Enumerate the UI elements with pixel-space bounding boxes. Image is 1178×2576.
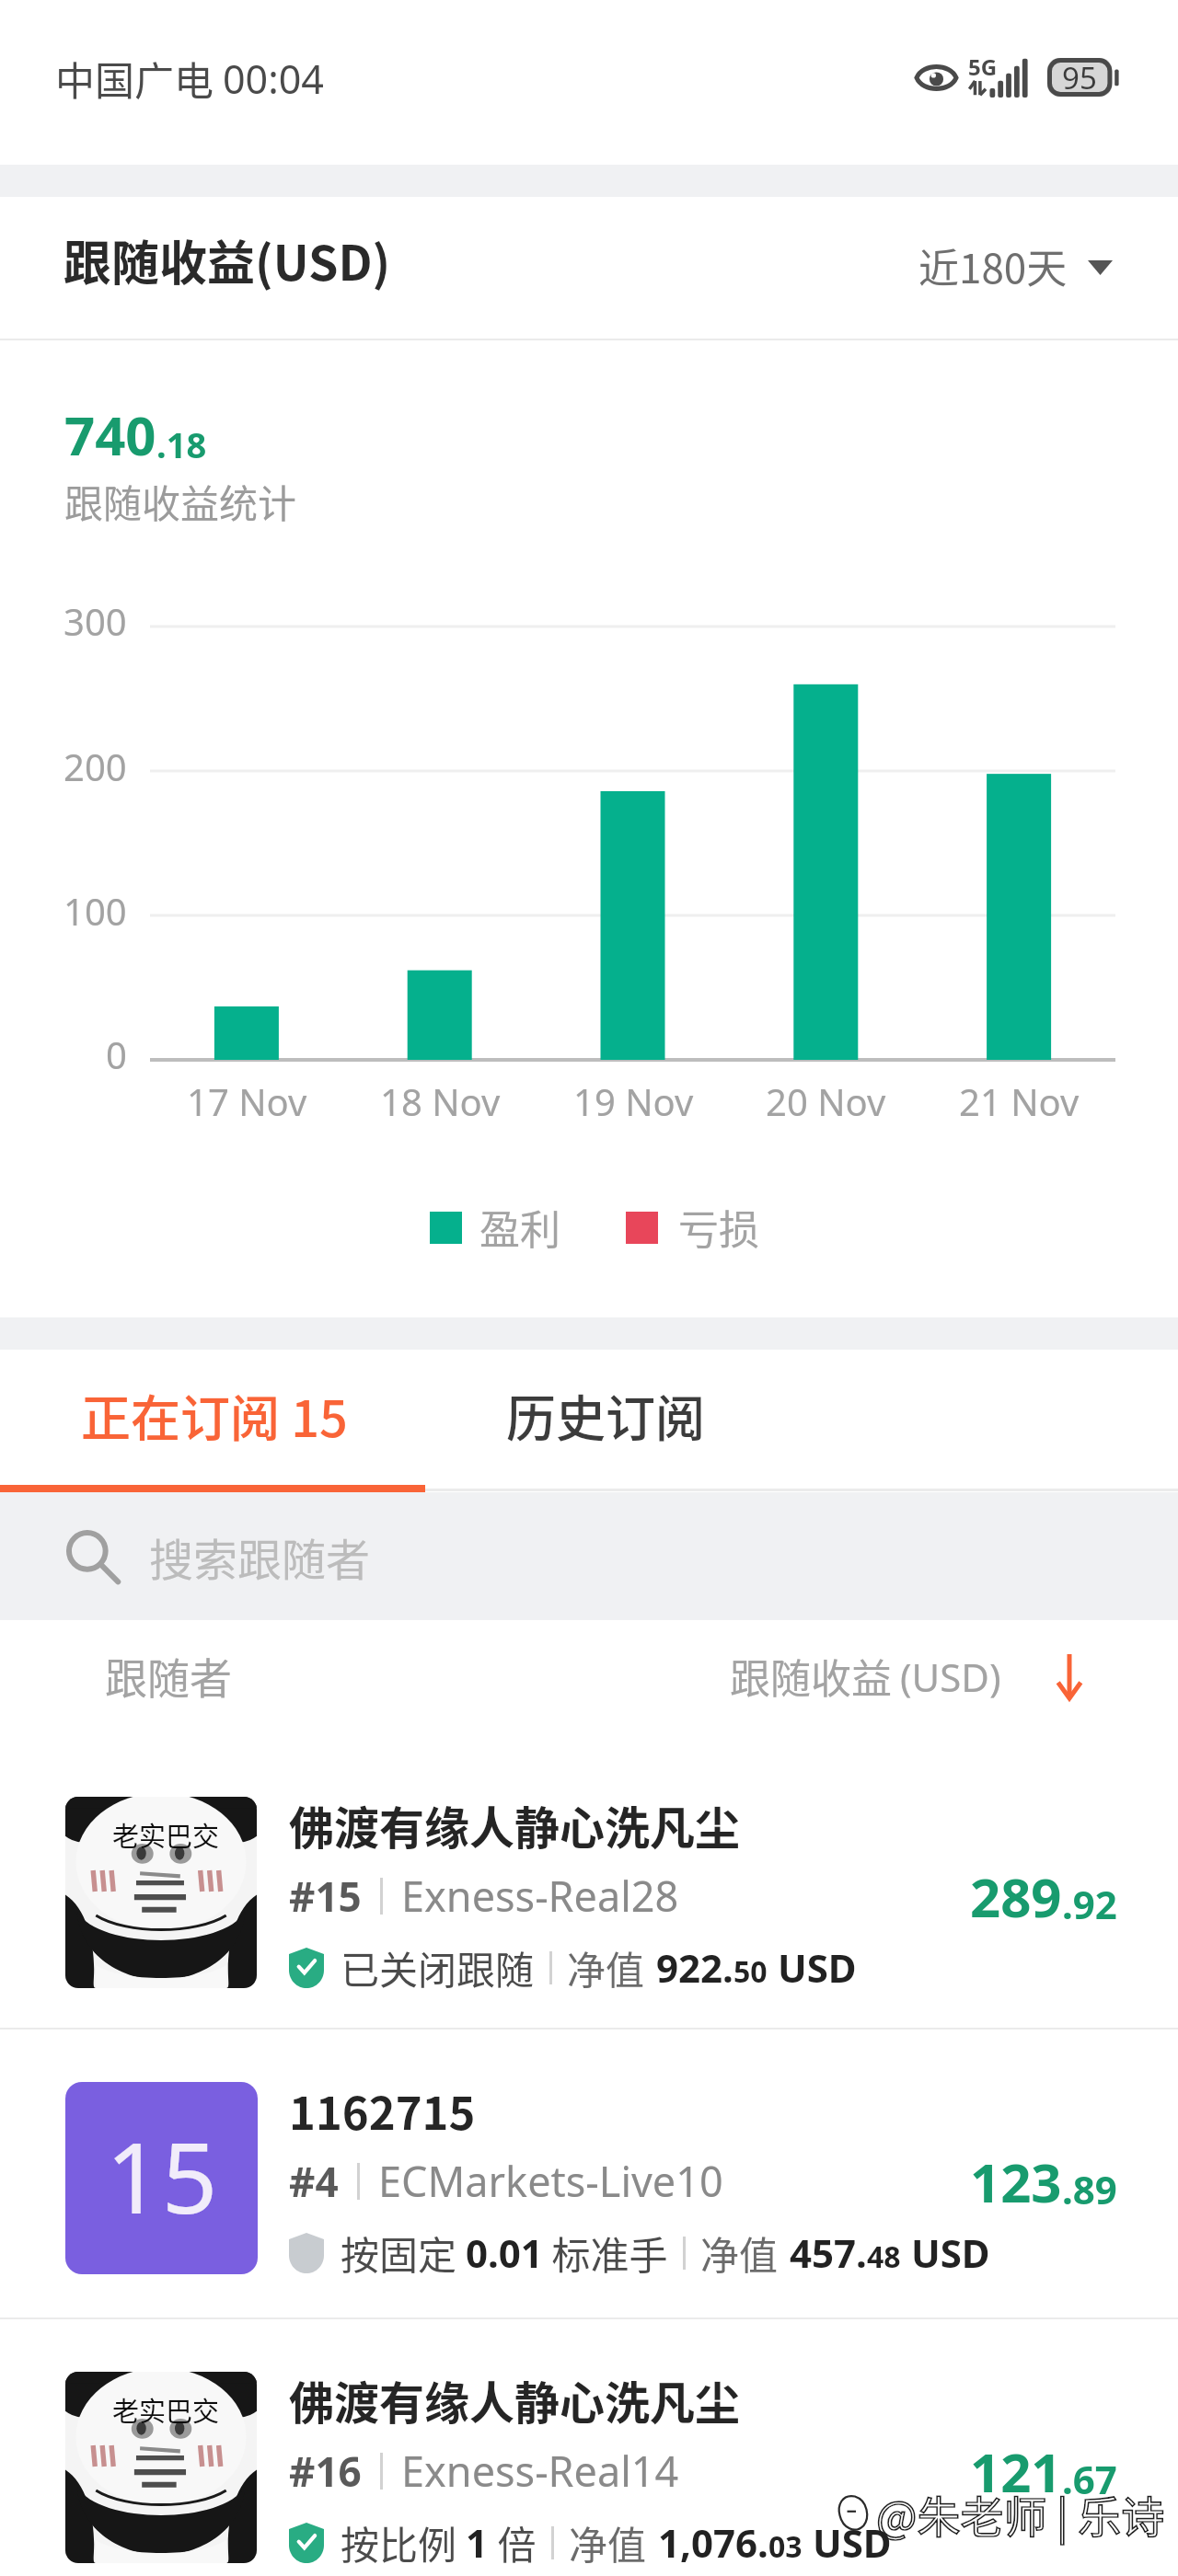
staticText: #15 bbox=[289, 1869, 362, 1924]
button[interactable]: 近180天 bbox=[900, 224, 1178, 312]
staticText: USD bbox=[803, 2516, 892, 2569]
staticText: 按固定 bbox=[341, 2225, 466, 2281]
staticText: 19 Nov bbox=[573, 1076, 694, 1126]
staticText: 已关闭跟随 bbox=[341, 1939, 535, 1995]
staticText: 净值 bbox=[700, 2225, 779, 2281]
staticText: 0 bbox=[106, 1029, 127, 1079]
staticText: .67 bbox=[1062, 2453, 1117, 2505]
staticText: @朱老师 | 乐诗 bbox=[876, 2482, 1165, 2545]
staticText: 123 bbox=[970, 2145, 1062, 2218]
staticText: 正在订阅 15 bbox=[81, 1379, 348, 1451]
staticText: 03 bbox=[768, 2526, 803, 2567]
staticText: #4 bbox=[289, 2154, 339, 2209]
staticText: 盈利 bbox=[479, 1198, 560, 1257]
staticText: Exness-Real14 bbox=[401, 2443, 679, 2499]
button[interactable]: 历史订阅 bbox=[428, 1350, 782, 1483]
staticText: 300 bbox=[64, 596, 127, 646]
staticText: .89 bbox=[1062, 2163, 1117, 2215]
other: Eye comfort mode bbox=[912, 61, 961, 95]
staticText: 1 bbox=[466, 2516, 489, 2569]
staticText: Exness-Real28 bbox=[401, 1868, 679, 1924]
staticText: 0.01 bbox=[466, 2226, 543, 2279]
staticText: 中国广电 bbox=[55, 50, 214, 107]
staticText: 21 Nov bbox=[959, 1076, 1080, 1126]
staticText: 289 bbox=[970, 1860, 1062, 1933]
button[interactable]: 老实巴交 bbox=[0, 2317, 1178, 2576]
staticText: 老实巴交 bbox=[112, 2390, 220, 2429]
other: Battery 95 percent bbox=[1047, 58, 1121, 97]
staticText: 20 Nov bbox=[766, 1076, 886, 1126]
staticText: ECMarkets-Live10 bbox=[378, 2153, 723, 2209]
staticText: 922. bbox=[656, 1941, 733, 1994]
staticText: 1162715 bbox=[289, 2077, 476, 2143]
button[interactable]: 正在订阅 15 bbox=[0, 1350, 428, 1483]
staticText: #16 bbox=[289, 2444, 362, 2499]
staticText: 50 bbox=[733, 1951, 768, 1992]
staticText: USD bbox=[901, 2226, 990, 2279]
staticText: 121 bbox=[970, 2435, 1062, 2508]
other: Sort descending bbox=[1057, 1654, 1082, 1698]
staticText: 00:04 bbox=[223, 52, 324, 106]
staticText: 跟随收益 bbox=[730, 1647, 892, 1706]
staticText: 200 bbox=[64, 742, 127, 791]
staticText: .92 bbox=[1062, 1878, 1117, 1930]
staticText: 按比例 bbox=[341, 2514, 466, 2570]
staticText: 净值 bbox=[567, 1939, 645, 1995]
staticText: .18 bbox=[156, 420, 207, 468]
staticText: 佛渡有缘人静心洗凡尘 bbox=[289, 1792, 741, 1857]
staticText: 100 bbox=[64, 886, 127, 936]
staticText: 740 bbox=[64, 398, 156, 471]
staticText: 18 Nov bbox=[380, 1076, 501, 1126]
staticText: 跟随收益(USD) bbox=[64, 225, 391, 294]
staticText: 17 Nov bbox=[187, 1076, 307, 1126]
staticText: 15 bbox=[106, 2110, 218, 2242]
staticText: 净值 bbox=[569, 2514, 647, 2570]
staticText: 1,076. bbox=[658, 2516, 768, 2569]
staticText: USD bbox=[768, 1941, 857, 1994]
button[interactable]: Search bbox=[0, 1492, 1178, 1620]
staticText: 佛渡有缘人静心洗凡尘 bbox=[289, 2367, 741, 2432]
staticText: 95 bbox=[1062, 57, 1097, 96]
staticText: 历史订阅 bbox=[506, 1379, 705, 1451]
staticText: 5G bbox=[968, 52, 998, 82]
button[interactable]: 跟随收益 bbox=[711, 1638, 1178, 1715]
other: Search bbox=[64, 1528, 121, 1585]
staticText: 457. bbox=[790, 2226, 867, 2279]
staticText: (USD) bbox=[900, 1650, 1001, 1703]
staticText: 近180天 bbox=[918, 236, 1068, 295]
staticText: 搜索跟随者 bbox=[149, 1524, 371, 1589]
staticText: 标准手 bbox=[543, 2225, 668, 2281]
other: 5G signal strength bbox=[968, 55, 1031, 98]
button[interactable]: 15 bbox=[0, 2028, 1178, 2324]
button[interactable]: 老实巴交 bbox=[0, 1742, 1178, 2039]
staticText: 跟随收益统计 bbox=[64, 473, 297, 529]
staticText: 倍 bbox=[489, 2514, 537, 2570]
staticText: 老实巴交 bbox=[112, 1815, 220, 1854]
staticText: 48 bbox=[867, 2237, 901, 2277]
staticText: 跟随者 bbox=[105, 1645, 232, 1707]
staticText: 亏损 bbox=[678, 1198, 759, 1257]
